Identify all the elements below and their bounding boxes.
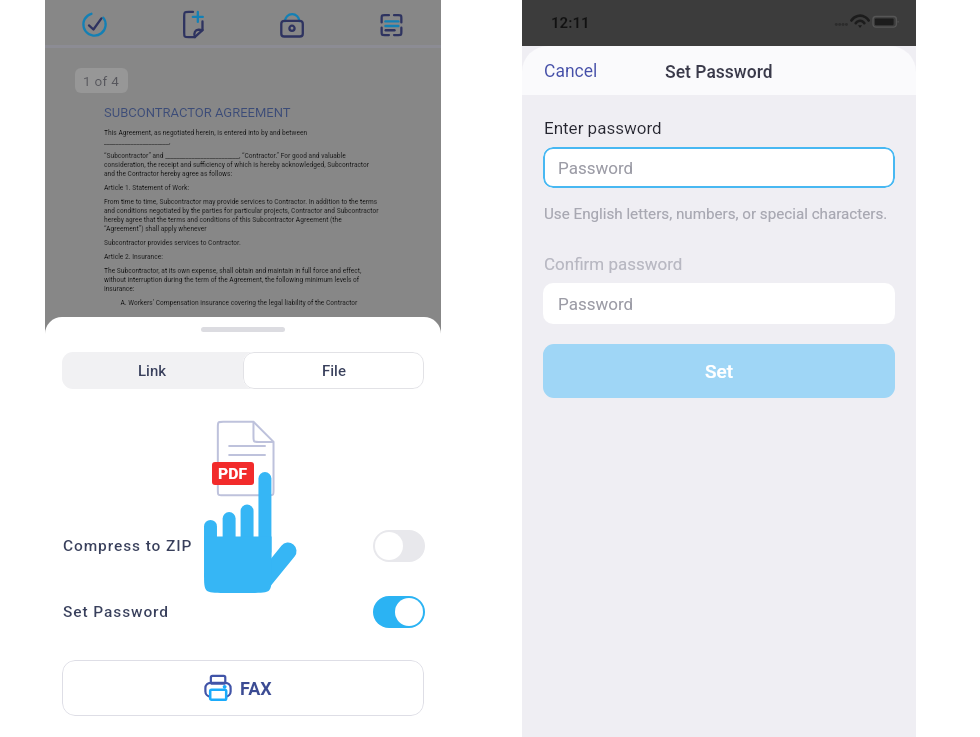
staticText: File <box>322 362 346 380</box>
button[interactable]: Set <box>543 344 895 398</box>
staticText: Confirm password <box>544 254 683 274</box>
staticText: 1 of 4 <box>83 73 120 89</box>
staticText: The Subcontractor, at its own expense, s… <box>104 267 380 293</box>
button[interactable]: Off <box>373 530 425 562</box>
button[interactable]: On <box>373 596 425 628</box>
staticText: Set <box>705 360 734 382</box>
staticText: “Subcontractor” and ____________________… <box>104 152 380 178</box>
staticText: From time to time, Subcontractor may pro… <box>104 198 380 233</box>
staticText: Compress to ZIP <box>63 537 193 555</box>
staticText: 12:11 <box>551 14 590 32</box>
staticText: Password <box>558 294 634 314</box>
staticText: Use English letters, numbers, or special… <box>544 205 888 223</box>
staticText: SUBCONTRACTOR AGREEMENT <box>104 105 291 120</box>
button[interactable]: Set Password <box>45 593 441 630</box>
staticText: A. Workers’ Compensation insurance cover… <box>104 299 358 307</box>
button[interactable]: Cancel <box>538 55 604 88</box>
staticText: FAX <box>240 678 272 699</box>
button[interactable]: Mark as done <box>45 0 144 41</box>
button[interactable]: Password <box>543 283 895 324</box>
button[interactable]: File <box>243 352 424 389</box>
staticText: Set Password <box>63 603 169 621</box>
button[interactable]: Lock document <box>243 0 342 41</box>
staticText: Link <box>138 362 167 380</box>
staticText: Article 2. Insurance: <box>104 253 164 261</box>
staticText: PDF <box>218 465 248 483</box>
staticText: Subcontractor provides services to Contr… <box>104 239 241 247</box>
staticText: Password <box>558 158 634 178</box>
button[interactable]: Add page <box>144 0 243 41</box>
staticText: Enter password <box>544 118 662 138</box>
button[interactable]: Link <box>62 352 243 389</box>
button[interactable]: Compress to ZIP <box>45 527 441 564</box>
button[interactable]: Password <box>543 147 895 188</box>
staticText: Set Password <box>665 62 773 83</box>
staticText: Cancel <box>544 61 598 82</box>
staticText: Article 1. Statement of Work: <box>104 184 190 192</box>
button[interactable]: Scan text <box>342 0 441 41</box>
button[interactable]: FAX <box>62 660 424 716</box>
staticText: This Agreement, as negotiated herein, is… <box>104 129 308 146</box>
